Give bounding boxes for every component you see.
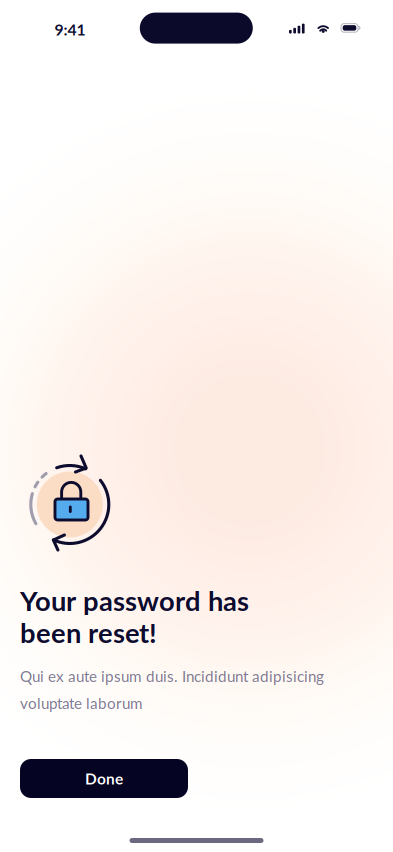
staticText: Qui ex aute ipsum duis. Incididunt adipi… (20, 667, 324, 685)
staticText: been reset! (20, 616, 157, 649)
staticText: voluptate laborum (20, 694, 143, 712)
staticText: 9:41 (54, 20, 85, 39)
staticText: Done (85, 769, 123, 788)
button[interactable]: Done (20, 759, 188, 798)
staticText: Your password has (20, 584, 249, 617)
